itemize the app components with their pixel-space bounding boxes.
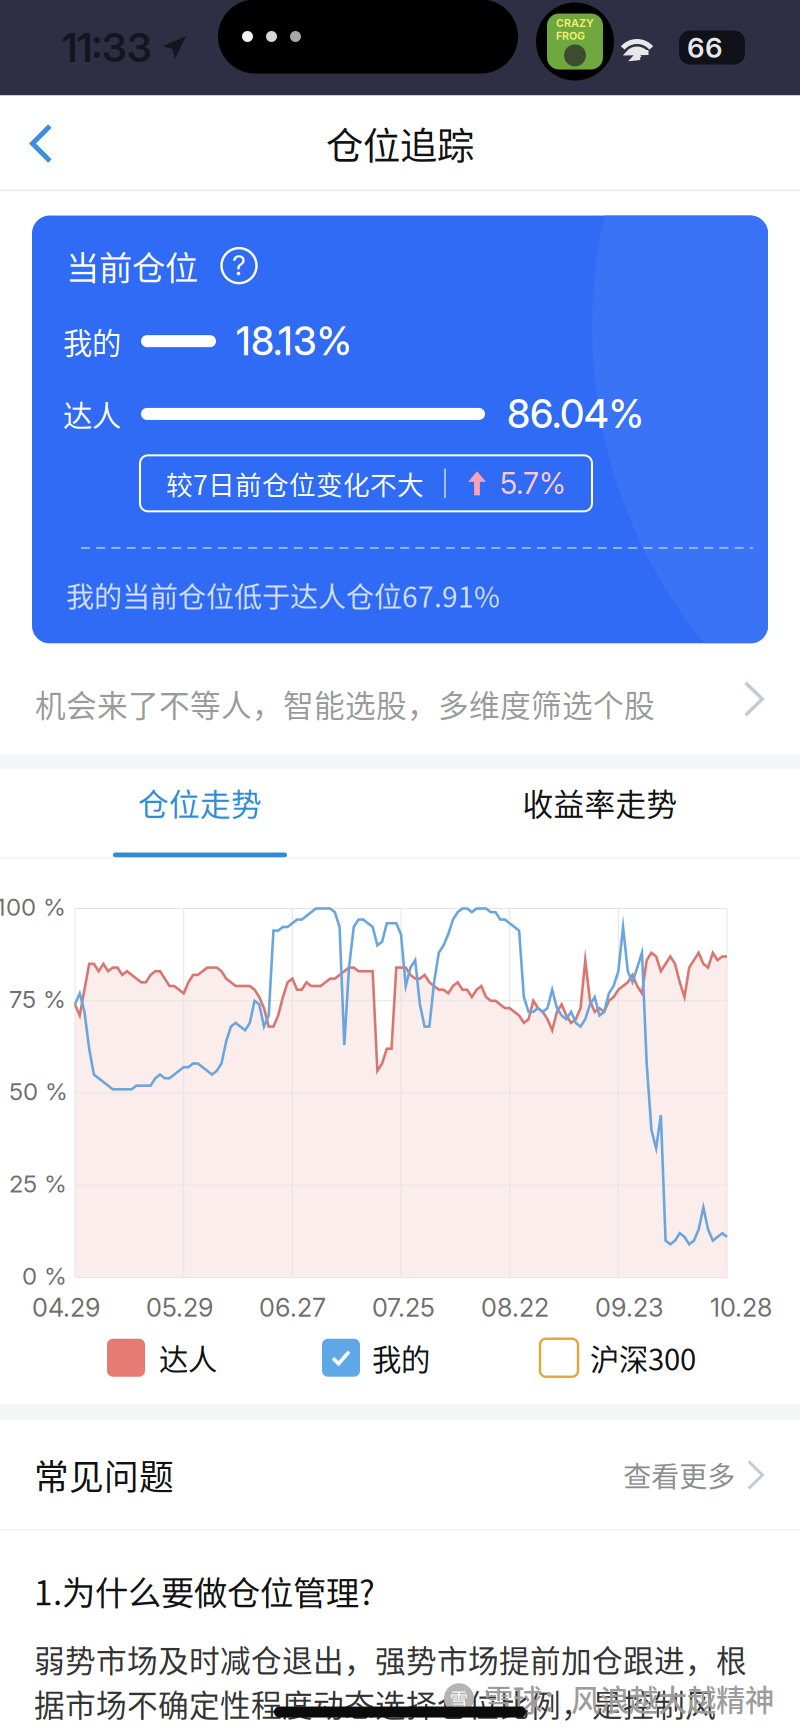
staticText: 5.7%: [500, 466, 566, 501]
button[interactable]: 仓位走势: [0, 769, 400, 857]
staticText: 当前仓位: [66, 241, 198, 290]
staticText: 50 %: [9, 1077, 68, 1106]
staticText: 我的: [63, 320, 121, 362]
staticText: 07.25: [372, 1292, 435, 1323]
staticText: 1.为什么要做仓位管理?: [34, 1566, 375, 1615]
staticText: 雪: [449, 1685, 468, 1712]
staticText: 100 %: [0, 892, 66, 921]
staticText: 机会来了不等人，智能选股，多维度筛选个股: [35, 681, 655, 726]
staticText: 沪深300: [590, 1336, 696, 1379]
staticText: ?: [232, 249, 246, 282]
staticText: 04.29: [32, 1292, 100, 1323]
staticText: 66: [687, 31, 723, 64]
staticText: 查看更多: [623, 1455, 735, 1495]
staticText: 11:33: [62, 23, 152, 72]
button[interactable]: 说明: [220, 247, 258, 285]
staticText: 08.22: [481, 1292, 549, 1323]
staticText: 较7日前仓位变化不大: [166, 464, 424, 503]
button[interactable]: 机会来了不等人，智能选股，多维度筛选个股: [0, 643, 800, 754]
staticText: 18.13%: [236, 318, 352, 365]
staticText: 10.28: [710, 1292, 772, 1323]
staticText: 我的当前仓位低于达人仓位67.91%: [66, 575, 500, 615]
staticText: 仓位走势: [138, 780, 262, 824]
staticText: 仓位追踪: [326, 116, 474, 171]
button[interactable]: 收益率走势: [400, 769, 800, 857]
staticText: 75 %: [9, 985, 66, 1014]
staticText: 25 %: [9, 1169, 67, 1198]
staticText: 弱势市场及时减仓退出，强势市场提前加仓跟进，根据市场不确定性程度动态选择仓位比例…: [34, 1637, 747, 1734]
staticText: 我的: [372, 1336, 430, 1379]
button[interactable]: 查看更多: [623, 1455, 764, 1495]
staticText: CRAZY FROG: [556, 17, 594, 42]
staticText: 86.04%: [507, 391, 644, 437]
staticText: 达人: [159, 1336, 217, 1379]
staticText: 06.27: [259, 1292, 326, 1323]
staticText: 雪球：风浪越大越精神: [484, 1677, 774, 1719]
button[interactable]: 达人: [107, 1336, 217, 1379]
button[interactable]: 沪深300: [540, 1336, 696, 1379]
staticText: 常见问题: [34, 1450, 174, 1500]
button[interactable]: 返回: [0, 97, 86, 189]
staticText: 达人: [63, 393, 121, 435]
button[interactable]: 我的: [322, 1336, 430, 1379]
staticText: 09.23: [595, 1292, 664, 1323]
staticText: 05.29: [146, 1292, 213, 1323]
staticText: 0 %: [22, 1261, 67, 1290]
staticText: 收益率走势: [522, 780, 677, 824]
